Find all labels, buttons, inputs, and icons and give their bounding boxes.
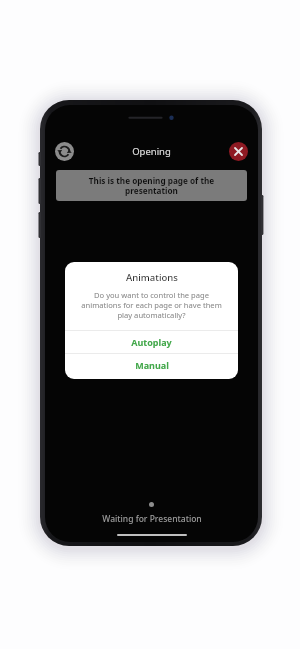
staticText: Manual — [135, 359, 169, 371]
staticText: This is the opening page of the presenta… — [64, 175, 239, 197]
button[interactable]: Refresh — [55, 142, 74, 161]
staticText: Opening — [132, 145, 171, 158]
button[interactable]: Autoplay — [65, 331, 238, 353]
button[interactable]: Manual — [65, 354, 238, 376]
staticText: Autoplay — [131, 336, 172, 348]
staticText: Animations — [126, 271, 178, 284]
button[interactable]: Close — [229, 142, 248, 161]
button[interactable]: This is the opening page of the presenta… — [56, 170, 247, 201]
staticText: Do you want to control the page animatio… — [74, 290, 229, 320]
staticText: Waiting for Presentation — [102, 513, 202, 525]
